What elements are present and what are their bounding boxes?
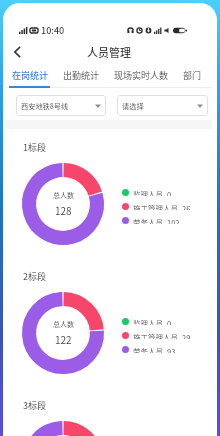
staticText: 29 (182, 332, 191, 339)
staticText: 总人数 (53, 190, 74, 200)
staticText: 劳务人员 (133, 346, 163, 353)
button[interactable]: 请选择 (117, 95, 208, 116)
staticText: 西安地铁8号线 (21, 101, 69, 111)
staticText: 人员管理 (87, 44, 131, 60)
staticText: 0 (167, 189, 172, 196)
button[interactable]: 劳务人员 (122, 217, 180, 224)
staticText: 0 (167, 318, 172, 325)
button[interactable]: 现场实时人数 (107, 64, 176, 86)
staticText: 3标段 (23, 399, 46, 412)
staticText: 10:40 (41, 24, 65, 37)
staticText: 1标段 (23, 141, 46, 154)
button[interactable]: 在岗统计 (5, 64, 56, 86)
staticText: 2标段 (23, 270, 46, 283)
button[interactable]: 部门人员 (176, 64, 212, 86)
button[interactable]: 出勤统计 (56, 64, 107, 86)
staticText: 128 (55, 203, 72, 217)
staticText: 102 (167, 217, 180, 224)
staticText: 出勤统计 (63, 69, 100, 82)
staticText: 施工管理人员 (133, 203, 178, 210)
staticText: 部门人员 (183, 69, 205, 82)
button[interactable]: 施工管理人员 (122, 203, 191, 210)
staticText: 93 (167, 346, 176, 353)
staticText: 现场实时人数 (114, 69, 169, 82)
button[interactable]: 劳务人员 (122, 346, 176, 353)
button[interactable]: Back (7, 42, 27, 62)
staticText: 劳务人员 (133, 217, 163, 224)
button[interactable]: 监理人员 (122, 318, 172, 325)
staticText: 监理人员 (133, 189, 163, 196)
staticText: 122 (55, 332, 72, 346)
button[interactable]: 施工管理人员 (122, 332, 191, 339)
staticText: 总人数 (53, 319, 74, 329)
button[interactable]: 西安地铁8号线 (16, 95, 106, 116)
button[interactable]: 监理人员 (122, 189, 172, 196)
staticText: 在岗统计 (12, 69, 49, 82)
staticText: 请选择 (122, 101, 144, 111)
staticText: 施工管理人员 (133, 332, 178, 339)
staticText: 26 (182, 203, 191, 210)
staticText: 监理人员 (133, 318, 163, 325)
